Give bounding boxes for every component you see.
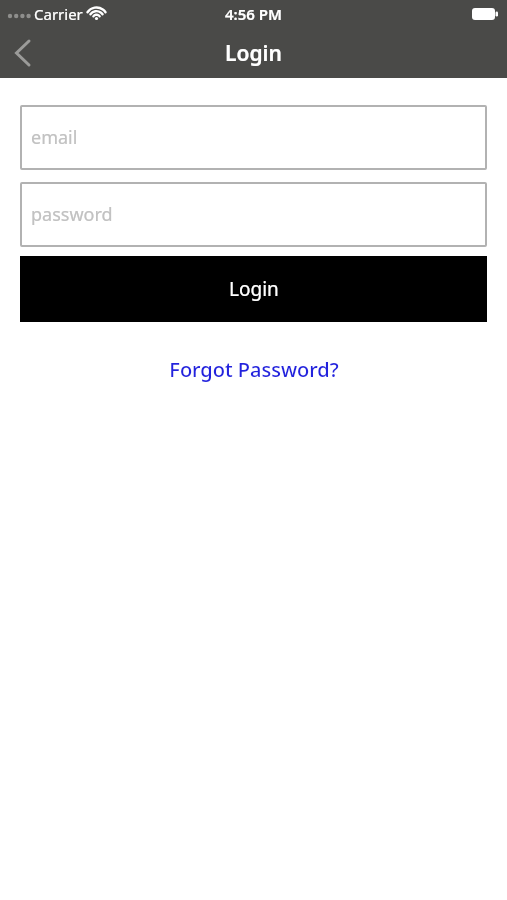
button[interactable]: email — [20, 105, 487, 170]
button[interactable]: Login — [20, 256, 487, 322]
staticText: password — [31, 202, 113, 227]
staticText: email — [31, 125, 78, 150]
button[interactable] — [0, 31, 44, 75]
staticText: Login — [225, 39, 282, 68]
staticText: 4:56 PM — [225, 4, 282, 24]
button[interactable]: password — [20, 182, 487, 247]
staticText: Login — [229, 276, 279, 302]
staticText: Carrier — [34, 4, 83, 24]
button[interactable]: Forgot Password? — [169, 356, 339, 383]
